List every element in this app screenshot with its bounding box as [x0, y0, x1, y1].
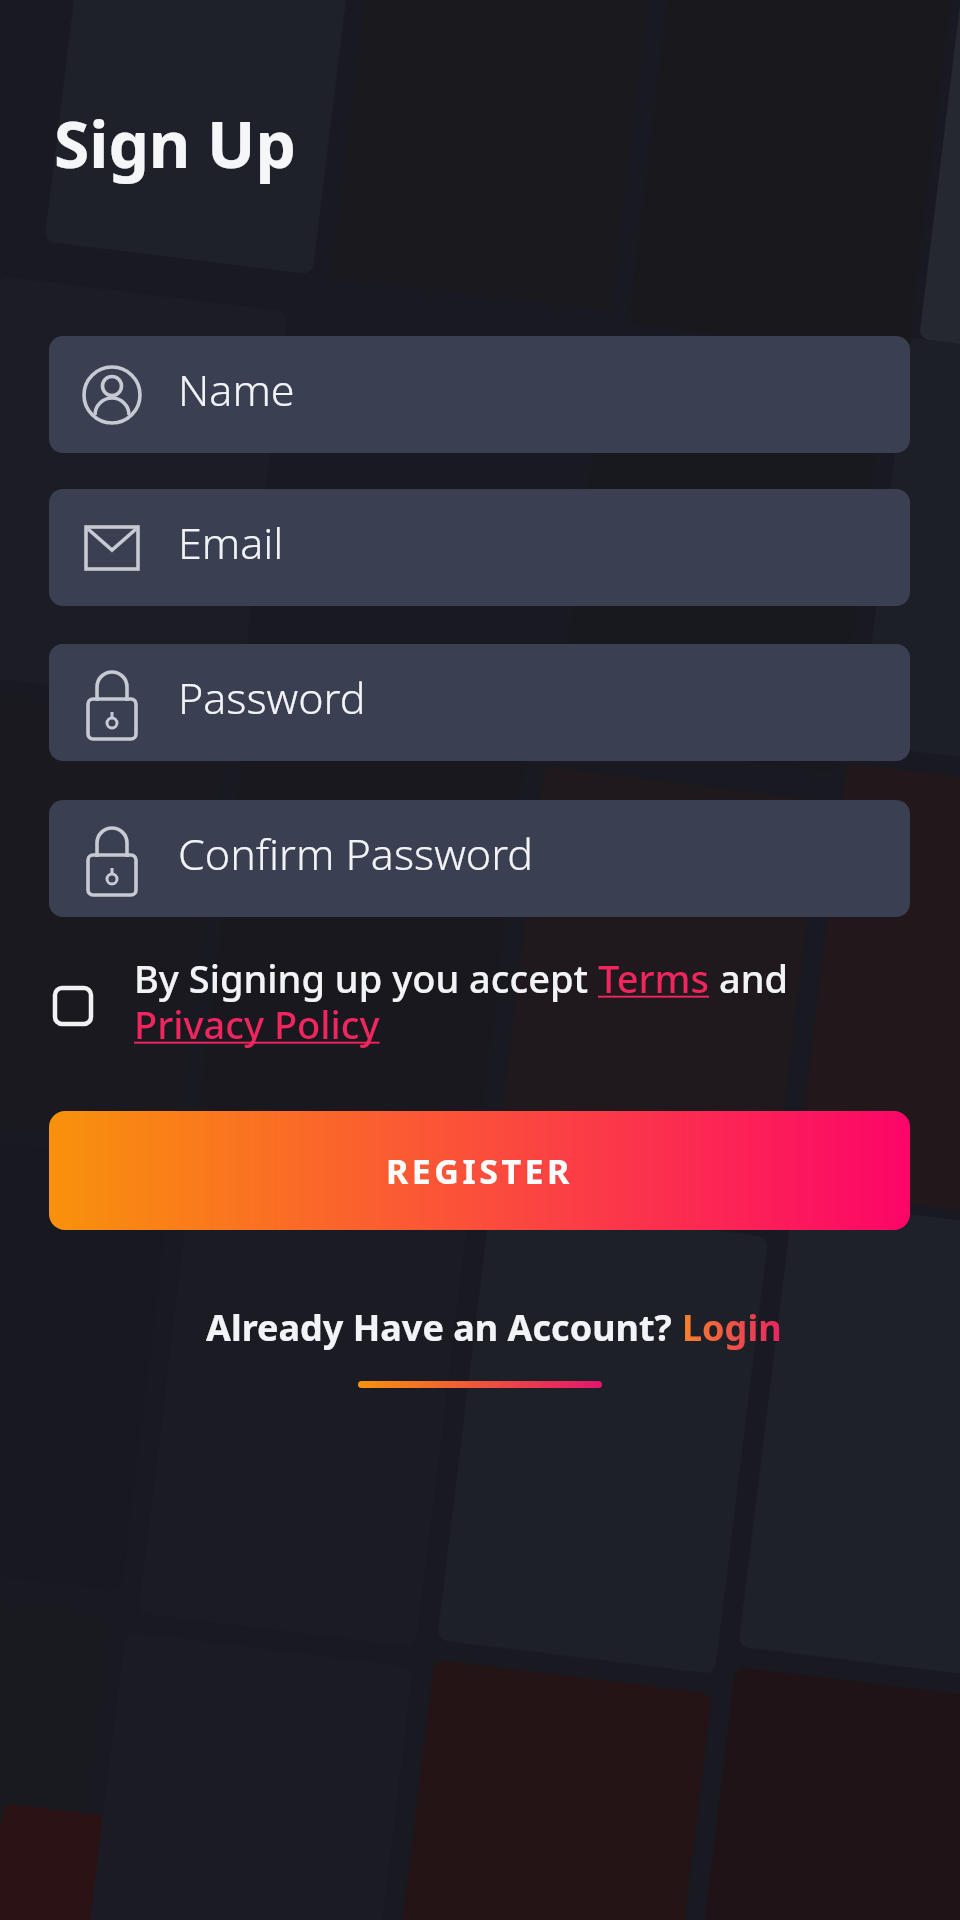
- staticText: Password: [178, 668, 366, 727]
- staticText: Confirm Password: [178, 824, 533, 883]
- staticText: By Signing up you accept Terms and: [134, 952, 789, 1004]
- button[interactable]: By Signing up you accept Terms and: [55, 952, 789, 1056]
- button[interactable]: Confirm Password: [49, 800, 910, 917]
- staticText: Already Have an Account?: [206, 1303, 682, 1352]
- button[interactable]: REGISTER: [49, 1111, 910, 1230]
- staticText: Email: [178, 513, 284, 572]
- button[interactable]: Login: [682, 1303, 782, 1352]
- staticText: Name: [178, 360, 295, 419]
- staticText: REGISTER: [386, 1148, 573, 1194]
- button[interactable]: Password: [49, 644, 910, 761]
- button[interactable]: Email: [49, 489, 910, 606]
- staticText: Sign Up: [54, 100, 296, 187]
- staticText: Privacy Policy: [134, 998, 380, 1050]
- button[interactable]: Name: [49, 336, 910, 453]
